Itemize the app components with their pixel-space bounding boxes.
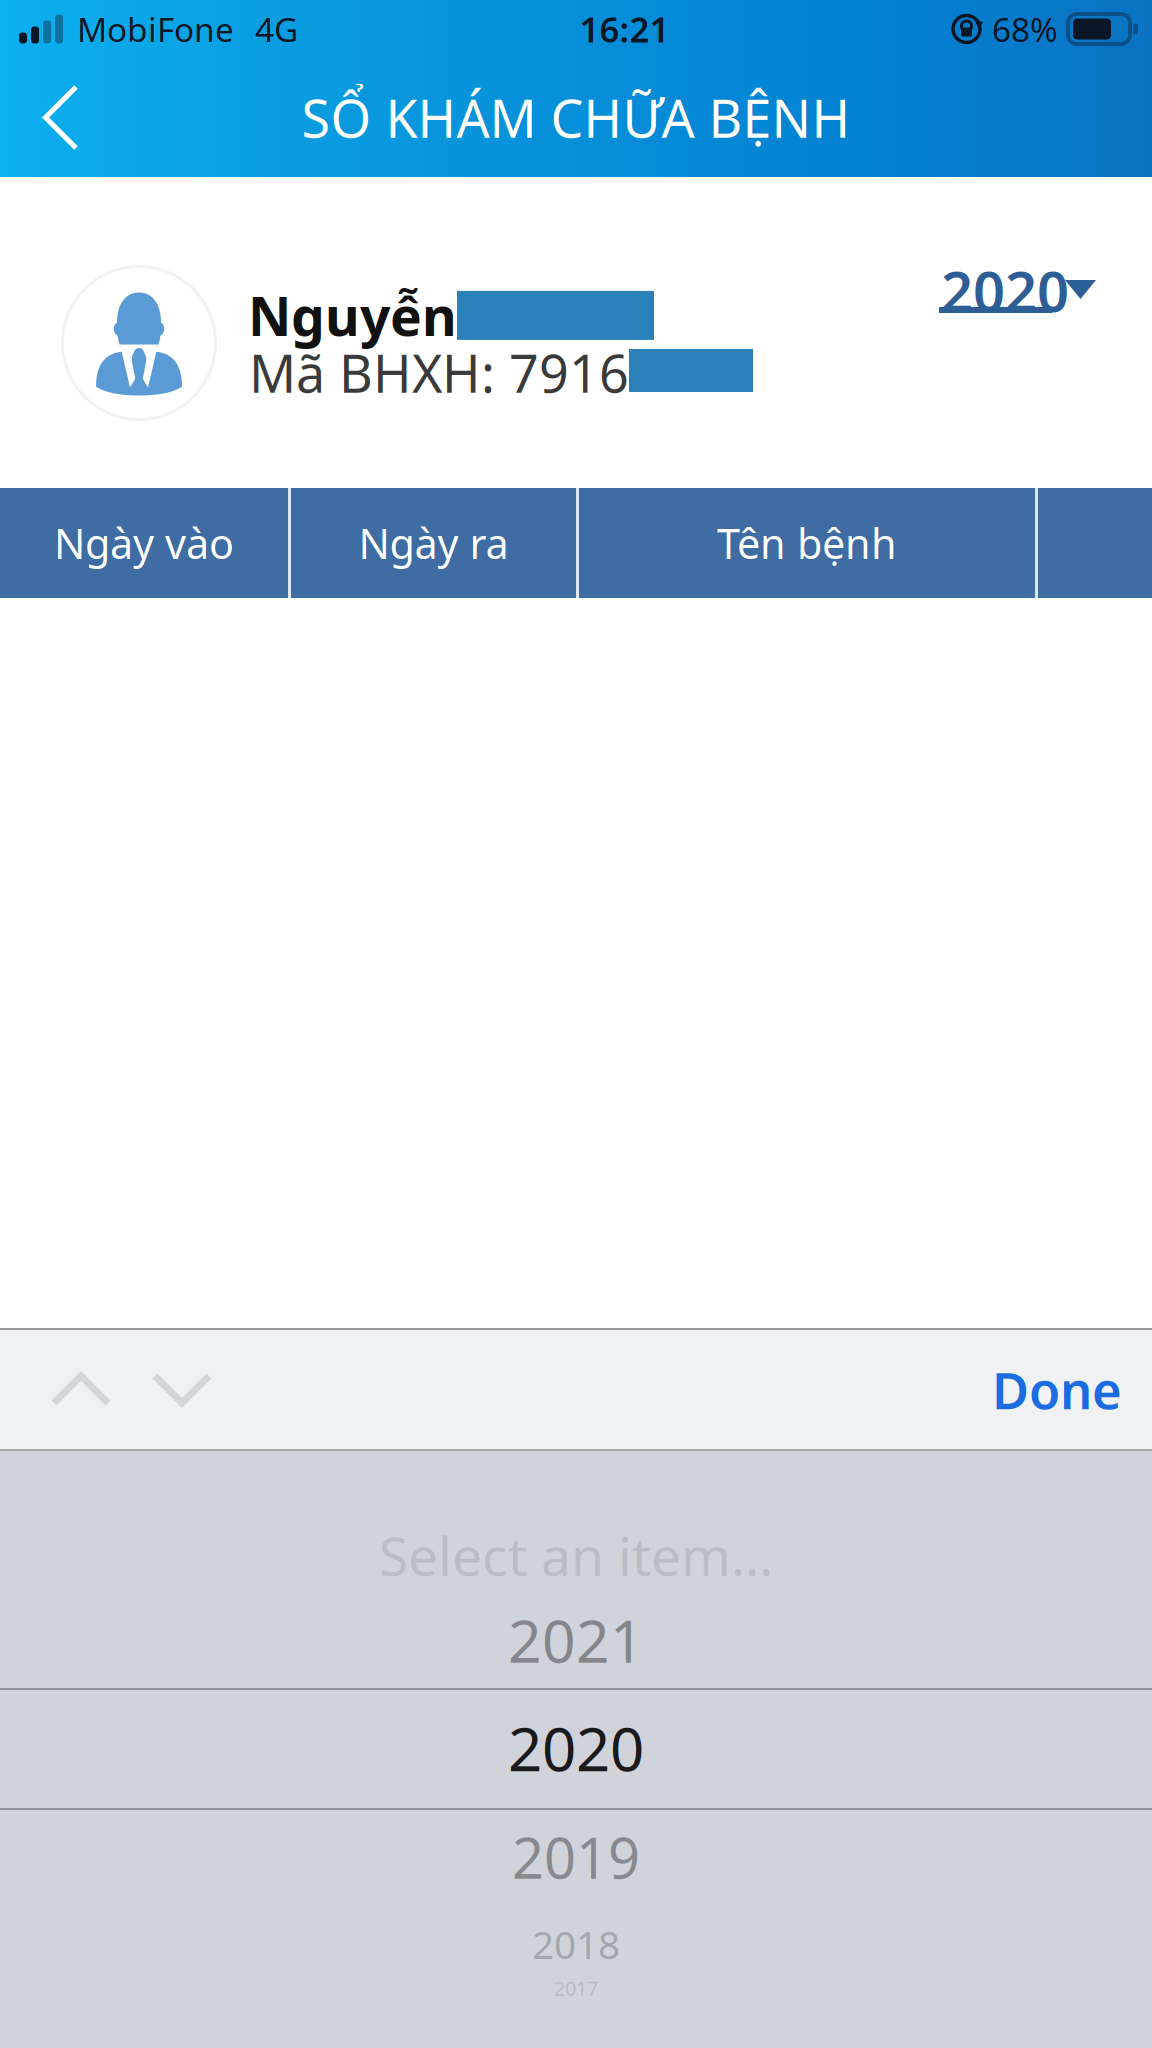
staticText: 2019: [512, 1820, 640, 1894]
staticText: MobiFone: [77, 7, 234, 51]
staticText: 2018: [532, 1918, 620, 1970]
button[interactable]: Back: [0, 57, 113, 177]
staticText: Select an item…: [379, 1520, 773, 1590]
staticText: Tên bệnh: [717, 516, 897, 570]
button[interactable]: Done: [973, 1328, 1141, 1451]
staticText: 16:21: [579, 6, 669, 52]
staticText: 68%: [992, 7, 1058, 51]
button[interactable]: Next: [130, 1328, 234, 1451]
staticText: 2020: [941, 253, 1069, 327]
staticText: Ngày vào: [54, 516, 234, 570]
button[interactable]: 2020: [939, 233, 1139, 337]
staticText: 2020: [508, 1708, 644, 1788]
staticText: Mã BHXH: 7916: [249, 338, 629, 407]
staticText: Nguyễn: [248, 280, 457, 351]
staticText: 4G: [255, 7, 298, 51]
button[interactable]: Previous: [18, 1328, 144, 1451]
staticText: 2017: [554, 1975, 598, 2001]
staticText: Done: [992, 1356, 1122, 1423]
staticText: SỔ KHÁM CHỮA BỆNH: [301, 83, 850, 152]
staticText: 2021: [508, 1601, 644, 1679]
staticText: Ngày ra: [358, 516, 508, 570]
